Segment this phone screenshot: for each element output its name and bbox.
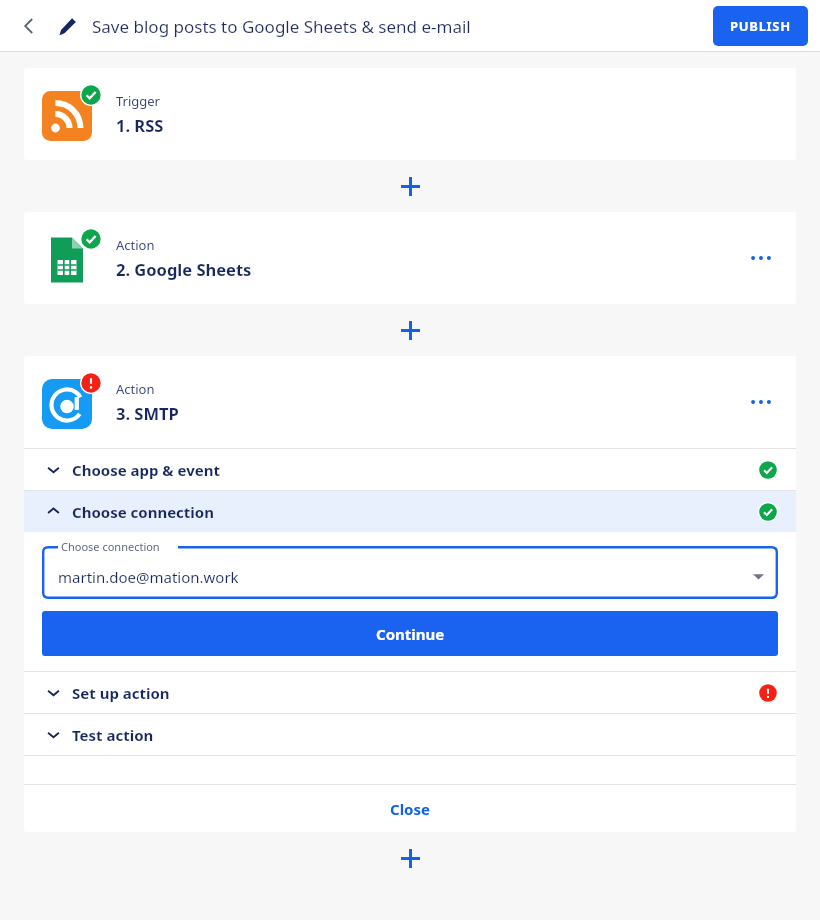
staticText: Choose connection: [61, 539, 160, 554]
staticText: Choose connection: [72, 502, 214, 522]
button[interactable]: Continue: [42, 611, 778, 656]
button[interactable]: More options: [740, 381, 782, 423]
button[interactable]: Add step: [389, 309, 431, 351]
button[interactable]: PUBLISH: [713, 6, 808, 46]
button[interactable]: Choose connection: [24, 491, 796, 532]
staticText: Trigger: [116, 92, 160, 110]
button[interactable]: Set up action: [24, 672, 796, 713]
staticText: 2. Google Sheets: [116, 258, 252, 280]
staticText: 3. SMTP: [116, 402, 179, 424]
button[interactable]: Action: [24, 212, 796, 304]
button[interactable]: Choose app & event: [24, 449, 796, 490]
staticText: Action: [116, 380, 155, 398]
button[interactable]: Action: [24, 356, 796, 448]
staticText: Test action: [72, 725, 154, 745]
staticText: Action: [116, 236, 155, 254]
staticText: Set up action: [72, 683, 170, 703]
button[interactable]: Trigger: [24, 68, 796, 160]
staticText: 1. RSS: [116, 114, 164, 136]
button[interactable]: Add step: [389, 837, 431, 879]
button[interactable]: Back: [12, 9, 46, 43]
staticText: PUBLISH: [730, 17, 791, 35]
button[interactable]: Rename: [52, 11, 82, 41]
button[interactable]: Close: [24, 785, 796, 832]
staticText: Save blog posts to Google Sheets & send …: [92, 15, 471, 38]
button[interactable]: Add step: [389, 165, 431, 207]
button[interactable]: More options: [740, 237, 782, 279]
staticText: Close: [390, 799, 430, 819]
staticText: Choose app & event: [72, 460, 220, 480]
button[interactable]: martin.doe@mation.work: [42, 546, 778, 599]
staticText: Continue: [376, 624, 445, 644]
button[interactable]: Test action: [24, 714, 796, 755]
staticText: martin.doe@mation.work: [58, 567, 239, 587]
